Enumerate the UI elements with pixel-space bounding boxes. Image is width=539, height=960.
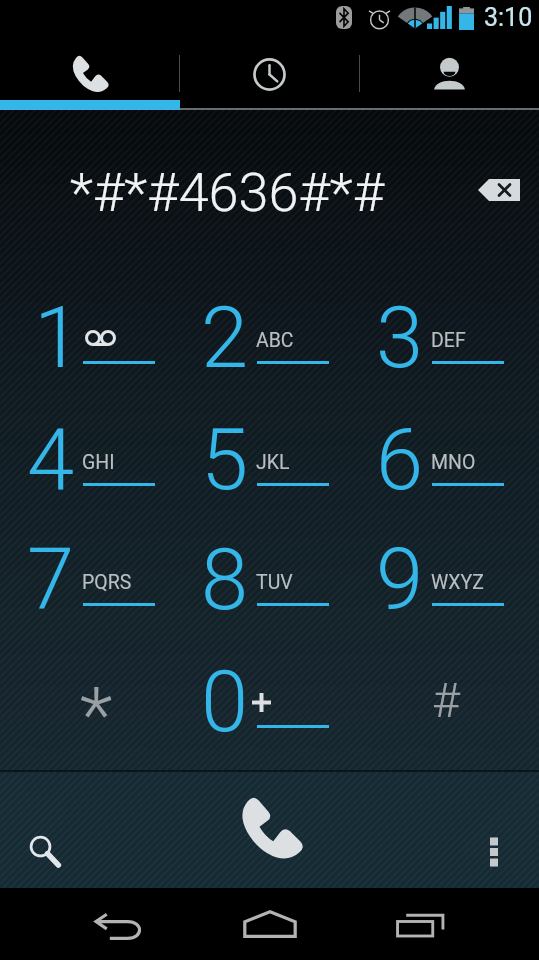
staticText: 3 <box>376 288 424 388</box>
staticText: 4 <box>27 410 75 510</box>
staticText: 7 <box>27 530 75 630</box>
staticText: WXYZ <box>431 571 484 594</box>
button[interactable]: Call <box>210 778 330 878</box>
staticText: 3:10 <box>484 3 533 32</box>
staticText: PQRS <box>82 571 132 594</box>
button[interactable]: * <box>0 643 175 761</box>
button[interactable]: 1 <box>0 279 175 397</box>
button[interactable]: 4 <box>0 401 175 519</box>
staticText: 0 <box>201 652 249 752</box>
staticText: 6 <box>376 410 424 510</box>
staticText: *#*#4636#*# <box>70 161 385 224</box>
staticText: 9 <box>376 530 424 630</box>
staticText: GHI <box>82 451 115 474</box>
button[interactable]: 0 <box>174 643 349 761</box>
staticText: # <box>432 672 460 728</box>
button[interactable]: Back <box>59 890 179 960</box>
staticText: MNO <box>431 451 476 474</box>
button[interactable]: 8 <box>174 521 349 639</box>
staticText: DEF <box>431 329 466 352</box>
button[interactable]: # <box>349 643 524 761</box>
button[interactable]: More options <box>458 816 530 888</box>
button[interactable]: Contacts <box>359 34 539 110</box>
button[interactable]: Search <box>9 816 81 888</box>
staticText: TUV <box>256 571 293 594</box>
staticText: * <box>80 670 113 759</box>
button[interactable]: 6 <box>349 401 524 519</box>
staticText: 5 <box>201 410 249 510</box>
button[interactable]: Recents <box>360 889 480 960</box>
button[interactable]: 9 <box>349 521 524 639</box>
button[interactable]: 5 <box>174 401 349 519</box>
button[interactable]: Delete <box>465 156 533 224</box>
staticText: 8 <box>201 530 249 630</box>
button[interactable]: Home <box>210 888 330 960</box>
button[interactable]: 2 <box>174 279 349 397</box>
staticText: 1 <box>34 288 82 388</box>
button[interactable]: 3 <box>349 279 524 397</box>
button[interactable]: Dialpad <box>0 34 179 110</box>
button[interactable]: 7 <box>0 521 175 639</box>
button[interactable]: Call log <box>179 34 359 110</box>
staticText: 2 <box>201 288 249 388</box>
staticText: ABC <box>256 329 294 352</box>
staticText: JKL <box>256 451 290 474</box>
